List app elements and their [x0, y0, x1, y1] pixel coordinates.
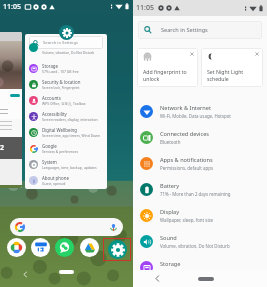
staticText: 11:05	[3, 2, 21, 12]
staticText: Accounts	[42, 95, 61, 101]
staticText: 11:05	[136, 3, 154, 13]
button[interactable]: Battery	[133, 176, 267, 202]
staticText: Screen lock, Fingerprint	[42, 85, 80, 90]
staticText: Bluetooth	[160, 139, 181, 145]
staticText: Wallpaper, sleep, font size	[160, 217, 214, 223]
button[interactable]: Voice search	[10, 218, 123, 236]
staticText: System	[42, 159, 57, 165]
button[interactable]: Security & location	[25, 76, 107, 92]
button[interactable]: Search in Settings	[138, 21, 262, 39]
button[interactable]: Digital Wellbeing	[25, 124, 107, 140]
button[interactable]: Accessibility	[25, 108, 107, 124]
button[interactable]: Storage	[133, 254, 267, 280]
staticText: Storage	[42, 63, 59, 69]
staticText: Battery	[160, 182, 180, 190]
staticText: Digital Wellbeing	[42, 127, 77, 133]
staticText: 57% used - 107 GB free	[42, 69, 79, 74]
button[interactable]: Volume, vibration, Do Not Disturb	[25, 49, 107, 60]
button[interactable]: About phone	[25, 172, 107, 188]
staticText: Google	[42, 143, 57, 149]
staticText: Connected devices	[160, 130, 210, 138]
staticText: Languages, time, backup, updates	[42, 165, 97, 170]
staticText: Network & Internet	[160, 104, 211, 112]
staticText: Accessibility	[42, 111, 67, 117]
button[interactable]: Drive	[80, 238, 99, 257]
button[interactable]: System	[25, 156, 107, 172]
staticText: 71% - More than 2 days remaining	[160, 191, 231, 197]
button[interactable]: Dismiss	[137, 48, 198, 87]
button[interactable]: Settings	[59, 25, 74, 40]
button[interactable]: Accounts	[25, 92, 107, 108]
button[interactable]: Dismiss	[190, 52, 194, 56]
staticText: Screen time, app timers, Wind Down	[42, 133, 100, 138]
staticText: Security & location	[42, 79, 81, 85]
button[interactable]: Google	[25, 140, 107, 156]
button[interactable]: Apps & notifications	[133, 150, 267, 176]
button[interactable]: Settings	[108, 240, 127, 259]
button[interactable]: Photos	[7, 238, 26, 257]
button[interactable]: Calendar	[31, 238, 50, 257]
staticText: Search in Settings	[161, 26, 208, 34]
button[interactable]: Search in Settings	[29, 36, 103, 49]
staticText: Services & preferences	[42, 149, 79, 154]
staticText: Guest, xperuid	[42, 181, 66, 186]
staticText: Display	[160, 208, 180, 216]
button[interactable]: Dismiss	[201, 48, 263, 87]
button[interactable]: Sound	[133, 228, 267, 254]
button[interactable]: Back	[154, 275, 161, 282]
button[interactable]: WhatsApp	[55, 238, 74, 257]
staticText: Volume, vibration, Do Not Disturb	[42, 50, 95, 54]
other: Voice search	[109, 223, 118, 232]
button[interactable]: Home	[59, 270, 74, 274]
staticText: About phone	[42, 175, 69, 181]
staticText: Volume, vibration, Do Not Disturb	[160, 243, 230, 249]
staticText: Apps & notifications	[160, 156, 213, 164]
staticText: Search in Settings	[43, 40, 79, 46]
staticText: Screen readers, display, interaction con…	[42, 117, 107, 122]
staticText: Sound	[160, 234, 177, 242]
button[interactable]: Display	[133, 202, 267, 228]
button[interactable]: Home	[198, 277, 214, 281]
staticText: 22	[0, 143, 5, 153]
staticText: WPS Office, 百度云, Toolbox	[42, 101, 86, 106]
button[interactable]: Connected devices	[133, 124, 267, 150]
staticText: Permissions, default apps	[160, 165, 214, 171]
staticText: Storage	[160, 260, 181, 268]
button[interactable]: Back	[22, 271, 29, 278]
button[interactable]: Storage	[25, 60, 107, 76]
staticText: Add fingerprint to unlock	[143, 68, 187, 82]
button[interactable]: Dismiss	[255, 52, 259, 56]
staticText: Wi-Fi, Mobile, Data usage, Hotspot	[160, 113, 231, 119]
staticText: Set Night Light schedule	[207, 68, 244, 82]
button[interactable]: Network & Internet	[133, 98, 267, 124]
